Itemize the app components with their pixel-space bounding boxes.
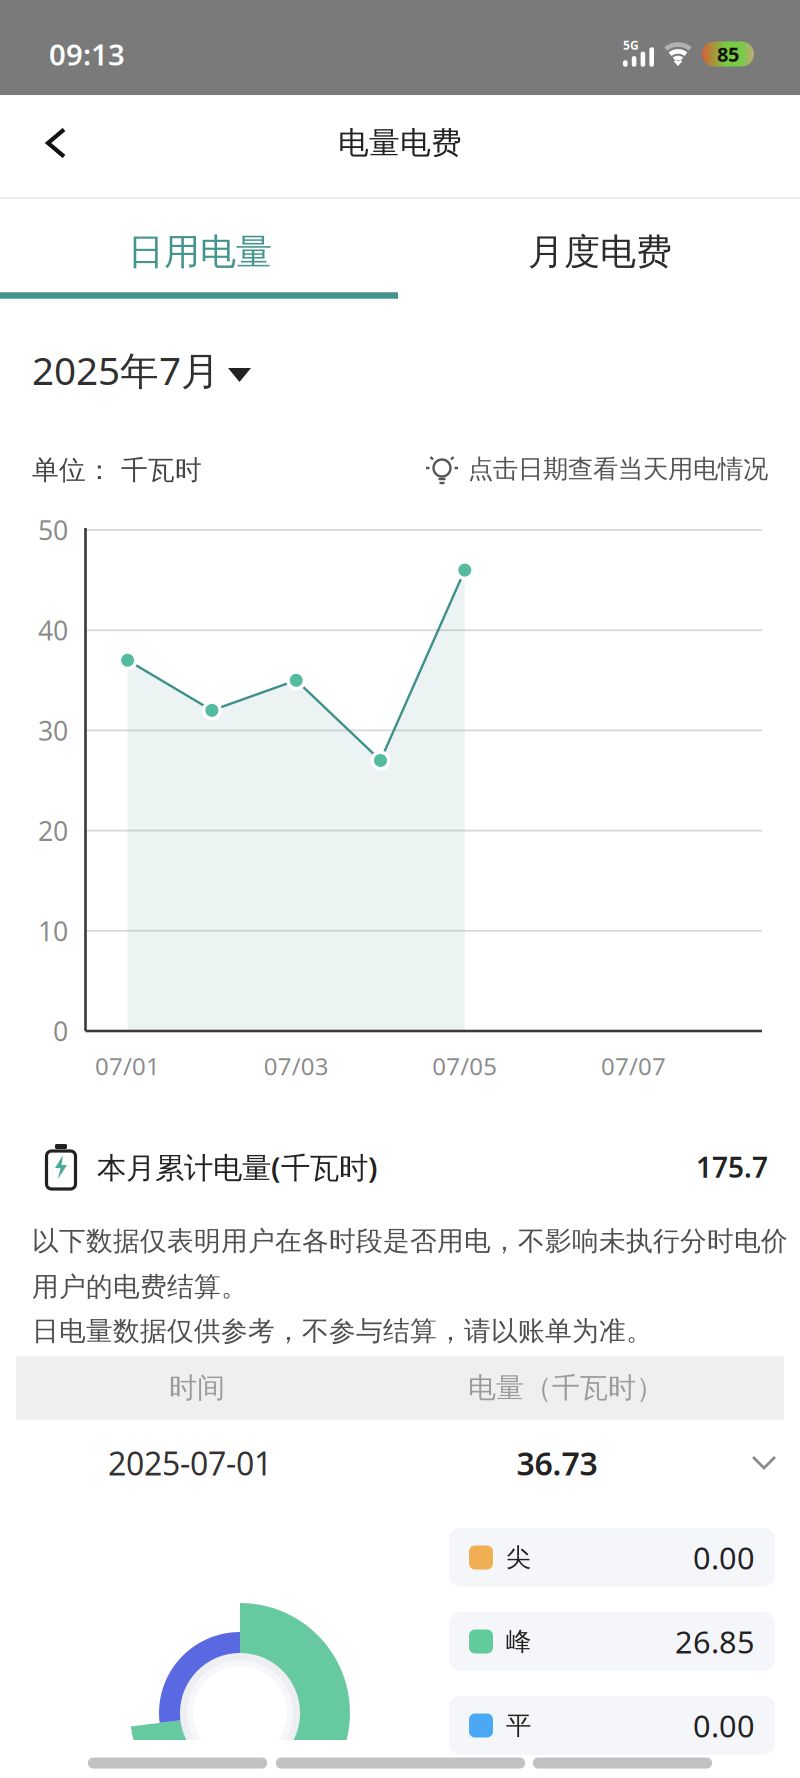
staticText: 电量（千瓦时） [468,1371,664,1405]
staticText: 40 [38,612,68,648]
staticText: 175.7 [696,1148,768,1186]
staticText: 2025年7月 [32,344,220,396]
staticText: 07/01 [95,1050,160,1082]
staticText: 日用电量 [128,230,272,274]
staticText: 月度电费 [528,230,672,274]
staticText: 日电量数据仅供参考，不参与结算，请以账单为准。 [32,1315,653,1347]
staticText: 30 [38,713,68,748]
staticText: 20 [38,813,68,848]
staticText: 07/07 [601,1050,666,1082]
staticText: 36.73 [516,1442,597,1484]
staticText: 0.00 [693,1705,755,1746]
staticText: 0.00 [693,1537,755,1578]
staticText: 85 [717,41,739,67]
staticText: 10 [38,913,68,948]
button[interactable]: 月度电费 [400,207,800,297]
staticText: 电量电费 [338,124,462,162]
staticText: 平 [506,1710,531,1741]
staticText: 50 [38,512,68,548]
staticText: 5G [623,37,639,53]
button[interactable]: 日用电量 [0,207,400,297]
button[interactable]: Back [33,114,79,171]
staticText: 2025-07-01 [108,1442,272,1484]
staticText: 时间 [169,1371,225,1405]
staticText: 09:13 [49,34,125,73]
staticText: 07/05 [432,1050,497,1082]
staticText: 峰 [506,1626,531,1657]
staticText: 07/03 [264,1050,329,1082]
staticText: 0 [53,1013,68,1049]
staticText: 本月累计电量(千瓦时) [97,1147,378,1186]
staticText: 点击日期查看当天用电情况 [468,453,768,484]
button[interactable]: 2025-07-01 [0,1420,800,1506]
button[interactable]: 2025年7月 [32,338,768,402]
staticText: 尖 [506,1542,531,1573]
staticText: 以下数据仅表明用户在各时段是否用电，不影响未执行分时电价 用户的电费结算。 [32,1225,788,1303]
staticText: 26.85 [675,1621,755,1662]
staticText: 单位： 千瓦时 [32,454,202,486]
